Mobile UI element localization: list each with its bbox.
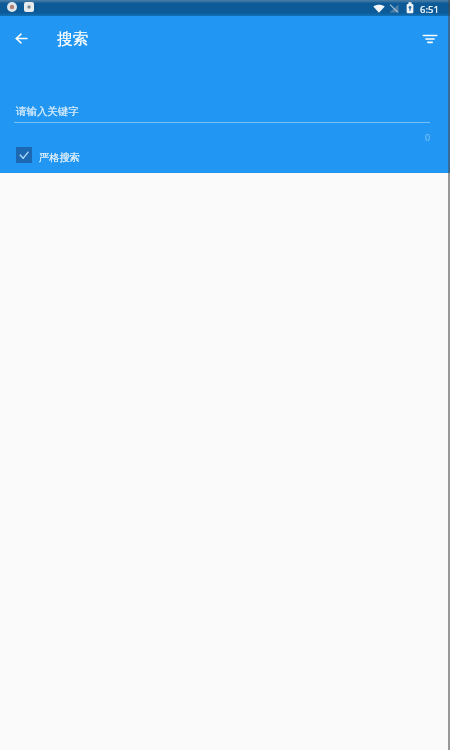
button[interactable]: 严格搜索 xyxy=(16,147,80,163)
button[interactable]: 请输入关键字 xyxy=(14,98,430,123)
staticText: 严格搜索 xyxy=(39,151,80,164)
button[interactable]: Back xyxy=(4,21,38,55)
staticText: 请输入关键字 xyxy=(16,105,79,118)
button[interactable]: Filter xyxy=(413,21,447,55)
staticText: 6:51 xyxy=(420,3,439,16)
staticText: 搜索 xyxy=(57,29,88,49)
staticText: 0 xyxy=(425,131,431,143)
